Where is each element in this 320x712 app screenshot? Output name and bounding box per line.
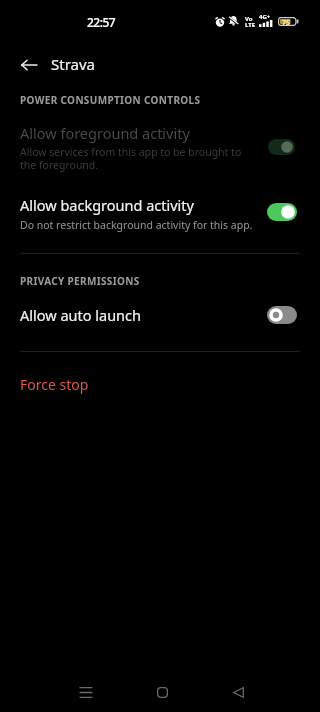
staticText: Allow background activity <box>20 195 194 215</box>
button[interactable]: Home <box>139 668 185 712</box>
staticText: Allow foreground activity <box>20 123 190 143</box>
button[interactable]: Force stop <box>0 367 320 403</box>
button[interactable]: Toggle <box>267 203 297 221</box>
button[interactable]: Back <box>215 668 261 712</box>
staticText: LTE <box>245 21 256 29</box>
staticText: PRIVACY PERMISSIONS <box>20 274 140 288</box>
staticText: Vo <box>245 15 253 23</box>
button[interactable]: Toggle <box>267 306 297 324</box>
staticText: Strava <box>51 54 95 74</box>
button[interactable]: Recent apps <box>63 668 109 712</box>
staticText: Allow services from this app to be broug… <box>20 145 242 172</box>
button[interactable]: Toggle <box>268 139 295 155</box>
button[interactable] <box>0 115 320 183</box>
staticText: 22:57 <box>87 14 116 30</box>
staticText: Force stop <box>20 375 89 394</box>
button[interactable] <box>0 186 320 244</box>
staticText: POWER CONSUMPTION CONTROLS <box>20 93 201 107</box>
staticText: 75 <box>282 18 291 28</box>
staticText: Allow auto launch <box>20 305 141 325</box>
staticText: Do not restrict background activity for … <box>20 218 253 232</box>
button[interactable]: Back <box>6 42 50 86</box>
staticText: 4G+ <box>259 13 271 21</box>
button[interactable] <box>0 295 320 341</box>
